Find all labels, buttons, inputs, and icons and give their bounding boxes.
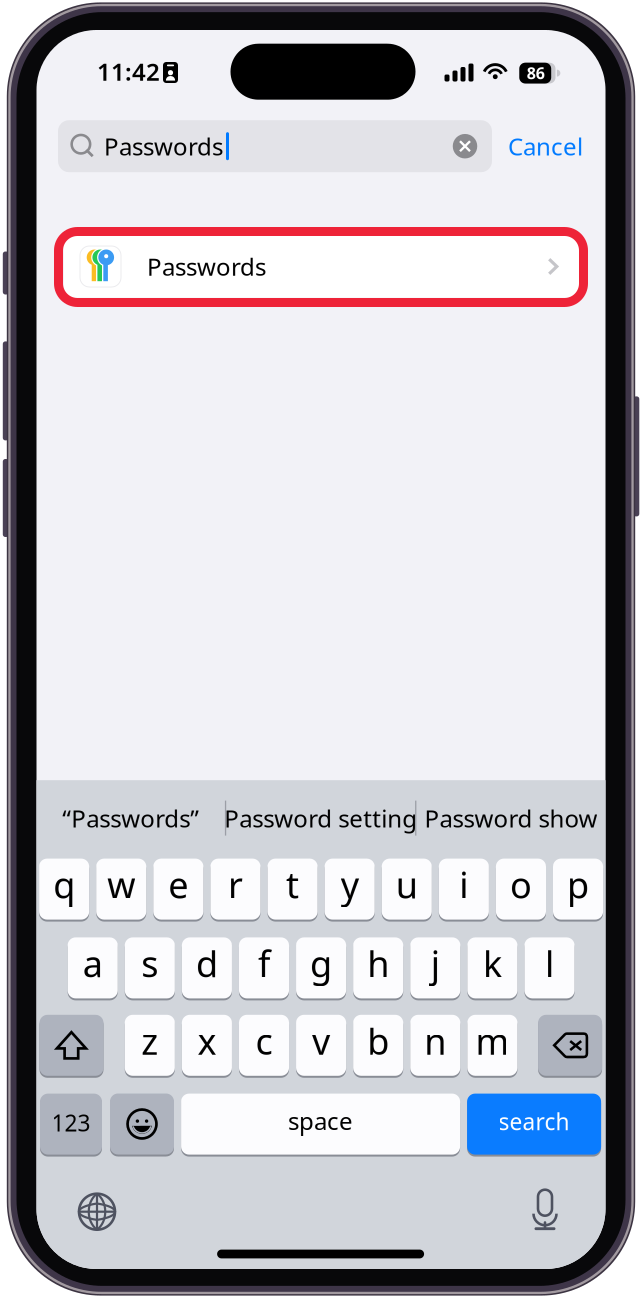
button[interactable]: y [325,859,375,922]
staticText: m [475,1017,509,1065]
button[interactable]: Cancel [492,120,584,172]
button[interactable]: h [353,937,403,1000]
staticText: Passwords [147,251,266,282]
staticText: a [83,939,103,987]
button[interactable]: Next keyboard [78,1193,115,1230]
button[interactable]: m [467,1015,517,1078]
staticText: v [312,1017,330,1065]
button[interactable]: Delete [538,1015,602,1078]
button[interactable]: z [125,1015,175,1078]
staticText: r [228,861,243,908]
staticText: e [168,861,188,908]
button[interactable]: b [353,1015,403,1078]
button[interactable]: u [382,859,432,922]
staticText: j [431,939,440,987]
button[interactable]: t [267,859,318,922]
staticText: Cancel [508,130,583,162]
staticText: g [310,939,332,987]
staticText: search [499,1106,570,1136]
button[interactable]: q [39,859,89,922]
button[interactable]: a [68,937,118,1000]
button[interactable]: l [524,937,575,1000]
staticText: Passwords [104,130,223,162]
staticText: z [141,1017,158,1065]
staticText: i [459,861,468,908]
staticText: 123 [51,1107,90,1138]
staticText: o [510,861,532,908]
button[interactable]: r [210,859,260,922]
button[interactable]: s [125,937,175,1000]
button[interactable]: p [553,859,603,922]
button[interactable]: Password show [416,799,605,837]
staticText: f [258,939,270,987]
staticText: 11:42 [97,55,160,87]
button[interactable]: “Passwords” [36,799,225,837]
button[interactable]: x [182,1015,232,1078]
staticText: d [196,939,218,987]
staticText: b [367,1017,389,1065]
staticText: y [341,861,359,908]
staticText: p [567,861,589,908]
button[interactable]: d [182,937,232,1000]
button[interactable]: 123 [40,1094,102,1157]
button[interactable]: Emoji [110,1093,174,1156]
button[interactable]: Password setting [224,799,417,837]
staticText: w [107,861,135,908]
staticText: c [255,1017,272,1065]
staticText: Password show [424,802,597,834]
staticText: x [197,1017,216,1065]
button[interactable]: e [153,859,203,922]
button[interactable]: i [439,859,489,922]
staticText: Password setting [224,802,417,834]
button[interactable]: o [496,859,546,922]
button[interactable]: Shift [39,1015,103,1078]
button[interactable]: k [467,937,517,1000]
staticText: “Passwords” [62,802,199,834]
button[interactable]: Dictate [528,1188,561,1230]
button[interactable]: Passwords [54,227,588,307]
button[interactable]: space [181,1094,460,1157]
button[interactable]: f [239,937,289,1000]
staticText: l [545,939,554,987]
button[interactable]: g [296,937,346,1000]
staticText: space [288,1105,353,1137]
button[interactable]: j [410,937,460,1000]
button[interactable]: search [467,1094,601,1157]
button[interactable]: Clear text [450,126,480,166]
staticText: q [53,861,75,908]
button[interactable]: w [96,859,146,922]
staticText: t [286,861,299,908]
staticText: h [367,939,389,987]
button[interactable]: n [410,1015,460,1078]
button[interactable]: c [239,1015,289,1078]
staticText: s [141,939,158,987]
staticText: k [483,939,502,987]
button[interactable]: v [296,1015,346,1078]
staticText: n [424,1017,446,1065]
staticText: u [396,861,418,908]
staticText: 86 [527,62,545,84]
